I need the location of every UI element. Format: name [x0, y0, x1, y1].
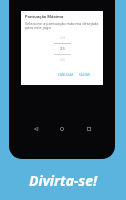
button[interactable]: Back [30, 123, 42, 135]
staticText: CANCELAR [58, 73, 74, 77]
button[interactable]: Recents [83, 123, 95, 135]
staticText: SALVAR [79, 73, 90, 77]
staticText: 24 [60, 35, 65, 41]
staticText: 25 [60, 46, 65, 52]
button[interactable]: SALVAR [78, 72, 91, 78]
staticText: Pontuação Máxima [25, 14, 64, 19]
staticText: 26 [60, 57, 65, 63]
staticText: Divirta-se! [29, 171, 97, 190]
button[interactable]: CANCELAR [57, 72, 75, 78]
button[interactable]: Home [56, 123, 68, 135]
staticText: Selecione a pontuação máxima desejada pa… [25, 21, 99, 30]
